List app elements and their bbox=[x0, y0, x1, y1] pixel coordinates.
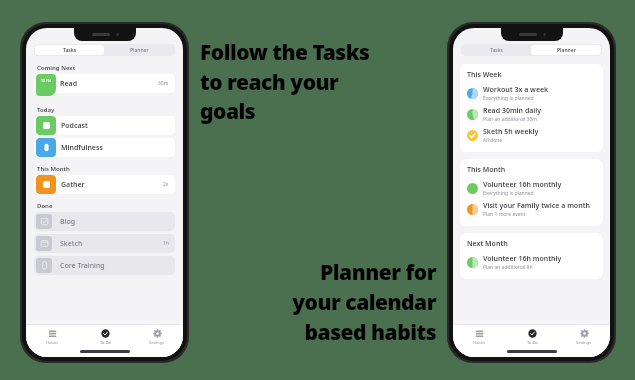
staticText: Planner bbox=[557, 47, 576, 54]
staticText: This Month bbox=[467, 165, 506, 175]
button[interactable]: Volunteer 16h monthly bbox=[467, 254, 597, 271]
button[interactable]: Core Training bbox=[34, 256, 175, 275]
staticText: Follow the Tasks bbox=[200, 38, 398, 67]
button[interactable]: To Do bbox=[79, 325, 131, 349]
staticText: Read bbox=[60, 79, 78, 89]
staticText: Mindfulness bbox=[61, 143, 103, 153]
staticText: based habits bbox=[236, 318, 436, 347]
staticText: Sketch bbox=[60, 239, 83, 249]
staticText: To Do bbox=[527, 340, 538, 345]
staticText: Workout 3x a week bbox=[483, 85, 549, 95]
button[interactable]: Settings bbox=[558, 325, 610, 349]
staticText: Plan 1 more event bbox=[483, 211, 526, 218]
staticText: All done bbox=[483, 137, 503, 144]
button[interactable]: Planner bbox=[104, 45, 174, 55]
button[interactable]: To Do bbox=[506, 325, 558, 349]
button[interactable]: Habits bbox=[26, 325, 79, 349]
staticText: your calendar bbox=[236, 288, 436, 317]
staticText: Habits bbox=[46, 340, 59, 345]
staticText: This Month bbox=[37, 165, 70, 173]
button[interactable]: Tasks bbox=[462, 45, 531, 55]
staticText: Blog bbox=[60, 217, 76, 227]
staticText: This Week bbox=[467, 70, 502, 80]
staticText: Planner bbox=[130, 47, 149, 54]
staticText: Gather bbox=[61, 180, 85, 190]
staticText: Visit your Family twice a month bbox=[483, 201, 590, 211]
button[interactable]: Blog bbox=[34, 212, 175, 231]
staticText: to reach your goals bbox=[200, 68, 398, 126]
button[interactable]: 12 PM bbox=[34, 74, 175, 96]
button[interactable]: Visit your Family twice a month bbox=[467, 201, 597, 218]
staticText: Tasks bbox=[63, 47, 77, 54]
button[interactable]: Habits bbox=[453, 325, 506, 349]
staticText: Coming Next bbox=[37, 64, 76, 72]
staticText: Settings bbox=[149, 340, 165, 345]
staticText: 30m bbox=[158, 80, 169, 87]
staticText: 2x bbox=[163, 181, 169, 188]
button[interactable]: Mindfulness bbox=[34, 138, 175, 157]
button[interactable]: Read 30min daily bbox=[467, 106, 597, 123]
button[interactable]: Podcast bbox=[34, 116, 175, 135]
button[interactable]: Settings bbox=[131, 325, 183, 349]
staticText: Today bbox=[37, 106, 55, 114]
staticText: Plan an additional 30m bbox=[483, 116, 537, 123]
staticText: Volunteer 16h monthly bbox=[483, 180, 562, 190]
button[interactable]: Planner bbox=[531, 45, 601, 55]
staticText: Everything is planned bbox=[483, 190, 534, 197]
button[interactable]: Gather bbox=[34, 175, 175, 194]
staticText: Everything is planned bbox=[483, 95, 534, 102]
staticText: Next Month bbox=[467, 239, 508, 249]
staticText: Settings bbox=[576, 340, 592, 345]
button[interactable]: Tasks bbox=[35, 45, 104, 55]
staticText: Sketh 5h weekly bbox=[483, 127, 539, 137]
staticText: 12 PM bbox=[41, 78, 52, 83]
staticText: Habits bbox=[473, 340, 486, 345]
staticText: Plan an additional 8h bbox=[483, 264, 533, 271]
staticText: Core Training bbox=[60, 261, 105, 271]
staticText: Done bbox=[37, 202, 53, 210]
staticText: Podcast bbox=[61, 121, 88, 131]
staticText: 1h bbox=[163, 240, 169, 247]
staticText: To Do bbox=[100, 340, 111, 345]
button[interactable]: Sketh 5h weekly bbox=[467, 127, 597, 144]
staticText: Tasks bbox=[490, 47, 503, 54]
button[interactable]: Workout 3x a week bbox=[467, 85, 597, 102]
staticText: Planner for bbox=[236, 258, 436, 287]
button[interactable]: Volunteer 16h monthly bbox=[467, 180, 597, 197]
button[interactable]: Sketch bbox=[34, 234, 175, 253]
staticText: Volunteer 16h monthly bbox=[483, 254, 562, 264]
staticText: Read 30min daily bbox=[483, 106, 542, 116]
